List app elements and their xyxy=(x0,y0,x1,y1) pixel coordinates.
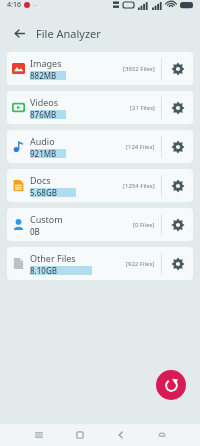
staticText: [1254 Files] xyxy=(123,182,155,190)
button[interactable]: Settings for Other Files xyxy=(162,247,193,280)
staticText: 876MB xyxy=(30,109,57,120)
button[interactable]: Custom xyxy=(7,208,193,241)
button[interactable]: Settings for Videos xyxy=(162,91,193,124)
button[interactable]: Videos xyxy=(7,91,193,124)
staticText: ··· xyxy=(33,1,38,9)
button[interactable]: Settings for Audio xyxy=(162,130,193,163)
staticText: [3652 Files] xyxy=(123,65,155,73)
staticText: 5.68GB xyxy=(30,187,57,198)
staticText: Custom xyxy=(30,213,63,225)
button[interactable]: Audio xyxy=(7,130,193,163)
staticText: [0 Files] xyxy=(133,221,155,229)
staticText: Other Files xyxy=(30,252,76,264)
button[interactable]: Settings for Images xyxy=(162,52,193,85)
button[interactable]: Back xyxy=(9,23,29,43)
staticText: [922 Files] xyxy=(126,260,155,268)
button[interactable]: Settings for Docs xyxy=(162,169,193,202)
button[interactable]: Menu xyxy=(29,425,49,445)
button[interactable]: Other Files xyxy=(7,247,193,280)
button[interactable]: Back xyxy=(111,425,131,445)
button[interactable]: Refresh xyxy=(156,370,186,400)
staticText: 882MB xyxy=(30,70,57,81)
staticText: 8.10GB xyxy=(30,265,57,276)
staticText: Audio xyxy=(30,135,55,147)
staticText: 0B xyxy=(30,226,40,237)
staticText: [124 Files] xyxy=(126,143,155,151)
staticText: [21 Files] xyxy=(130,104,155,112)
staticText: 4:16 xyxy=(7,0,21,10)
button[interactable]: Docs xyxy=(7,169,193,202)
staticText: Images xyxy=(30,57,62,69)
staticText: Docs xyxy=(30,174,51,186)
button[interactable]: Images xyxy=(7,52,193,85)
staticText: Videos xyxy=(30,96,59,108)
button[interactable]: Home xyxy=(70,425,90,445)
staticText: File Analyzer xyxy=(36,26,101,41)
button[interactable]: Settings for Custom xyxy=(162,208,193,241)
staticText: 921MB xyxy=(30,148,57,159)
button[interactable]: Screenshot xyxy=(152,425,172,445)
